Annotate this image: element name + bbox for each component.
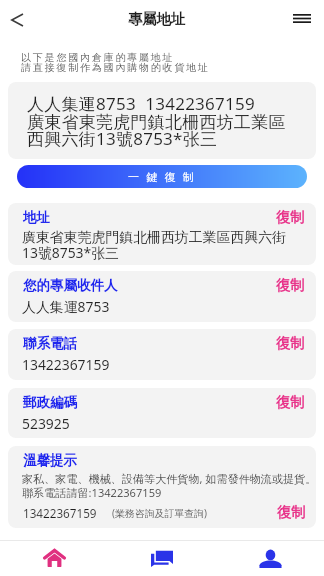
staticText: 您的專屬收件人 [23,277,118,294]
button[interactable]: Profile [216,541,324,576]
staticText: 人人集運8753 [22,297,110,316]
staticText: 地址 [23,209,50,226]
button[interactable]: 復制 [276,393,305,411]
staticText: 人人集運8753 13422367159 廣東省東莞虎門鎮北柵西坊工業區 西興六… [27,92,286,151]
button[interactable]: 復制 [276,276,305,294]
staticText: 專屬地址 [128,10,186,28]
button[interactable]: 復制 [276,334,305,352]
button[interactable]: 一 鍵 復 制 [17,165,307,188]
staticText: 聯系電話 [23,335,77,352]
staticText: 13422367159 [22,355,110,374]
staticText: 廣東省東莞虎門鎮北柵西坊工業區西興六街 13號8753*张三 [22,229,286,262]
staticText: 家私、家電、機械、設備等大件貨物, 如需發件物流或提貨。 聯系電話請留:1342… [22,471,316,500]
staticText: 溫馨提示 [23,452,77,469]
staticText: 復制 [277,503,306,521]
button[interactable]: 復制 [277,503,306,521]
button[interactable]: 復制 [276,208,305,226]
staticText: 復制 [276,334,305,352]
staticText: 13422367159 [23,505,97,521]
button[interactable]: Back [0,3,34,37]
button[interactable]: Home [0,541,108,576]
staticText: 復制 [276,208,305,226]
staticText: 復制 [276,393,305,411]
button[interactable]: Messages [108,541,216,576]
staticText: 523925 [22,414,70,433]
staticText: (業務咨詢及訂單查詢) [112,506,207,520]
staticText: 復制 [276,276,305,294]
staticText: 一 鍵 復 制 [128,169,196,184]
staticText: 以下是您國內倉庫的專屬地址 請直接復制作為國內購物的收貨地址 [21,51,210,74]
button[interactable]: Menu [286,4,318,32]
staticText: 郵政編碼 [23,394,77,411]
